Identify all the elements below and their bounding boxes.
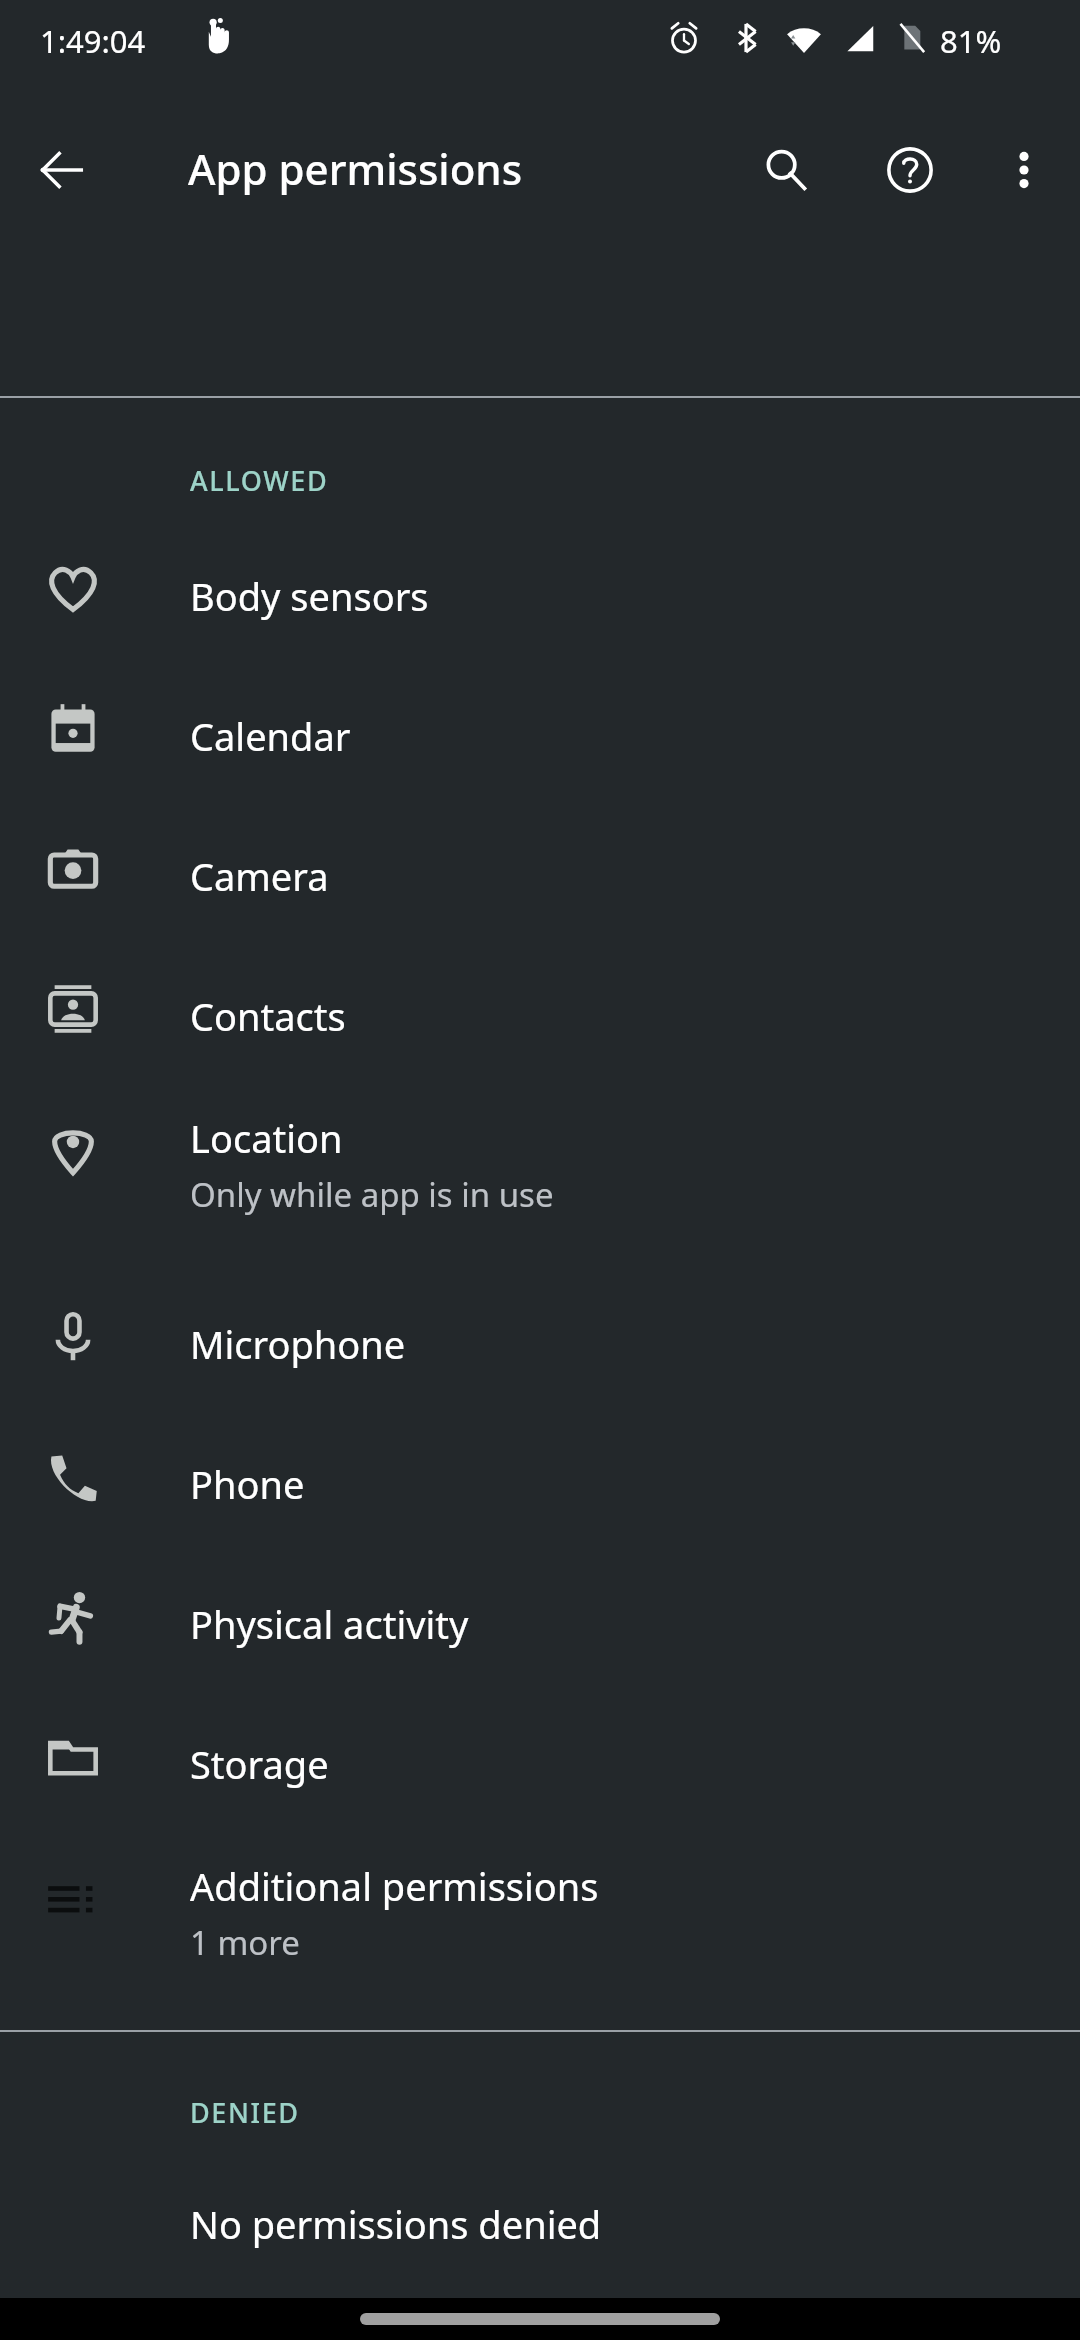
button[interactable]: Body sensors: [0, 530, 1080, 670]
staticText: 1 more: [190, 1920, 300, 1965]
staticText: Only while app is in use: [190, 1172, 554, 1217]
button[interactable]: Search: [744, 128, 828, 212]
staticText: Storage: [190, 1738, 329, 1790]
button[interactable]: Storage: [0, 1698, 1080, 1838]
staticText: No permissions denied: [190, 2198, 602, 2250]
staticText: Physical activity: [190, 1598, 469, 1650]
staticText: Phone: [190, 1458, 305, 1510]
staticText: Contacts: [190, 990, 346, 1042]
button[interactable]: Microphone: [0, 1278, 1080, 1418]
button[interactable]: Camera: [0, 810, 1080, 950]
staticText: Microphone: [190, 1318, 406, 1370]
staticText: DENIED: [190, 2094, 300, 2131]
staticText: Body sensors: [190, 570, 429, 622]
staticText: 81%: [940, 20, 1002, 62]
staticText: Calendar: [190, 710, 351, 762]
button[interactable]: Phone: [0, 1418, 1080, 1558]
button[interactable]: Contacts: [0, 950, 1080, 1090]
staticText: Additional permissions: [190, 1860, 599, 1912]
button[interactable]: Additional permissions: [0, 1838, 1080, 2014]
staticText: App permissions: [188, 140, 523, 197]
button[interactable]: Help: [868, 128, 952, 212]
staticText: ALLOWED: [190, 462, 329, 499]
button[interactable]: Back: [20, 128, 104, 212]
button[interactable]: Location: [0, 1090, 1080, 1266]
button[interactable]: Calendar: [0, 670, 1080, 810]
staticText: Camera: [190, 850, 329, 902]
staticText: Location: [190, 1112, 343, 1164]
button[interactable]: More options: [982, 128, 1066, 212]
staticText: 1:49:04: [40, 20, 146, 62]
button[interactable]: Physical activity: [0, 1558, 1080, 1698]
